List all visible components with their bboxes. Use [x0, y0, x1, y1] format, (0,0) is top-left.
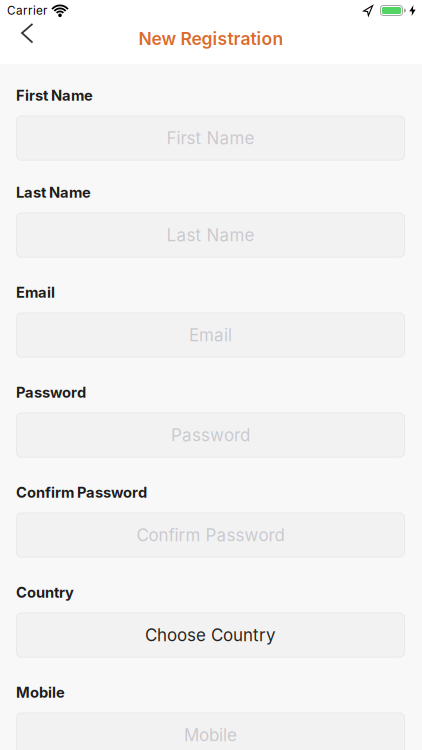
staticText: Country [16, 584, 74, 601]
staticText: Confirm Password [16, 484, 147, 501]
staticText: Carrier [7, 3, 47, 18]
button[interactable]: Password [16, 412, 405, 457]
staticText: Email [16, 284, 55, 301]
staticText: Mobile [184, 725, 237, 745]
button[interactable]: First Name [16, 115, 405, 160]
button[interactable]: Choose Country [16, 612, 405, 657]
staticText: First Name [16, 87, 93, 104]
staticText: First Name [166, 128, 254, 148]
staticText: Choose Country [145, 625, 276, 645]
button[interactable]: Back [0, 21, 44, 51]
staticText: Last Name [16, 184, 91, 201]
staticText: Email [189, 325, 232, 345]
button[interactable]: Mobile [16, 712, 405, 750]
button[interactable]: Last Name [16, 212, 405, 257]
staticText: Last Name [166, 225, 254, 245]
staticText: Password [16, 384, 86, 401]
staticText: Mobile [16, 684, 65, 701]
staticText: Confirm Password [136, 525, 284, 545]
staticText: Password [171, 425, 250, 445]
button[interactable]: Email [16, 312, 405, 357]
button[interactable]: Confirm Password [16, 512, 405, 557]
staticText: New Registration [138, 28, 283, 49]
